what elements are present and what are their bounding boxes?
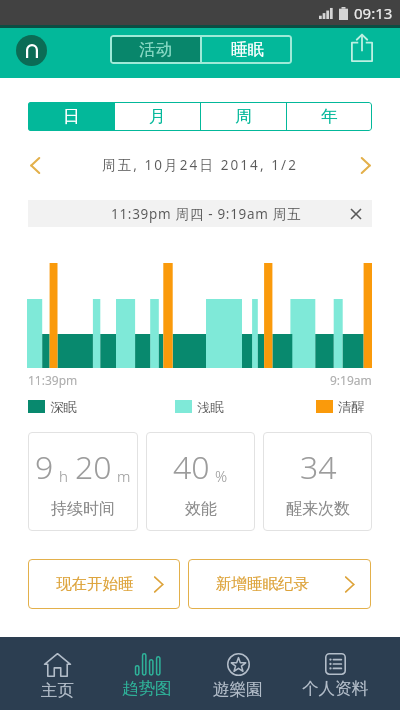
staticText: 11:39pm 周四 - 9:19am 周五	[111, 205, 302, 223]
staticText: 深眠	[50, 399, 77, 413]
staticText: 趋势图	[122, 678, 172, 699]
staticText: 月	[149, 106, 166, 127]
staticText: 34	[300, 445, 337, 489]
staticText: %	[215, 466, 228, 486]
staticText: 9:19am	[330, 372, 372, 388]
button[interactable]: 日	[28, 102, 114, 131]
button[interactable]: 浅眠	[175, 399, 224, 413]
button[interactable]: 深眠	[28, 399, 77, 413]
staticText: 9	[35, 445, 54, 489]
staticText: 09:13	[354, 3, 393, 23]
staticText: 醒来次数	[286, 499, 350, 519]
staticText: 20	[75, 445, 112, 489]
staticText: 睡眠	[231, 39, 264, 60]
staticText: 个人资料	[302, 678, 368, 699]
button[interactable]: 趋势图	[103, 653, 191, 699]
staticText: 年	[321, 106, 338, 127]
button[interactable]: 9	[28, 432, 138, 531]
staticText: 主页	[41, 680, 74, 701]
button[interactable]: 周	[201, 102, 286, 131]
staticText: 效能	[185, 499, 217, 519]
staticText: 周五, 10月24日 2014, 1/2	[102, 156, 299, 174]
button[interactable]: Share	[345, 31, 379, 65]
button[interactable]: 月	[115, 102, 200, 131]
button[interactable]: 新增睡眠纪录	[188, 559, 371, 609]
staticText: 11:39pm	[28, 372, 78, 388]
button[interactable]: Clear time range	[345, 203, 367, 225]
staticText: 40	[173, 445, 210, 489]
button[interactable]: 现在开始睡	[28, 559, 180, 609]
staticText: 浅眠	[197, 399, 224, 413]
button[interactable]: 11:39pm 周四 - 9:19am 周五	[28, 200, 372, 227]
button[interactable]: 个人资料	[291, 653, 379, 699]
button[interactable]: 主页	[13, 653, 101, 701]
button[interactable]: 活动	[110, 35, 200, 64]
staticText: m	[117, 466, 131, 486]
staticText: 清醒	[338, 399, 365, 413]
staticText: 日	[63, 106, 80, 127]
staticText: 周	[235, 106, 252, 127]
button[interactable]: 遊樂園	[194, 653, 282, 700]
button[interactable]: 年	[287, 102, 372, 131]
staticText: 持续时间	[51, 499, 115, 519]
button[interactable]: 40	[146, 432, 255, 531]
staticText: 现在开始睡	[56, 574, 134, 594]
staticText: 遊樂園	[213, 679, 263, 700]
button[interactable]: Previous day	[24, 154, 46, 176]
button[interactable]: App logo	[16, 35, 47, 66]
button[interactable]: 34	[263, 432, 372, 531]
button[interactable]: Next day	[354, 154, 376, 176]
button[interactable]: 清醒	[316, 399, 365, 413]
staticText: 活动	[139, 39, 172, 60]
button[interactable]: 睡眠	[202, 35, 292, 64]
staticText: h	[59, 466, 68, 486]
staticText: 新增睡眠纪录	[216, 574, 309, 594]
